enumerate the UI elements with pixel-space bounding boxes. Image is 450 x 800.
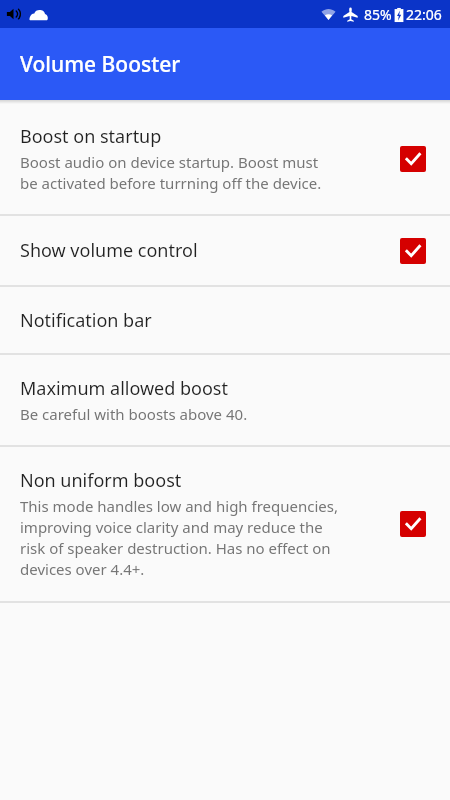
button[interactable]: Notification bar: [0, 287, 450, 353]
button[interactable]: Non uniform boost: [0, 447, 450, 601]
button[interactable]: Maximum allowed boost: [0, 355, 450, 445]
staticText: Boost on startup: [20, 124, 162, 149]
staticText: 85%: [364, 5, 392, 24]
staticText: This mode handles low and high frequenci…: [20, 496, 339, 580]
button[interactable]: Toggle setting: [398, 509, 428, 539]
button[interactable]: Show volume control: [0, 216, 450, 285]
staticText: Maximum allowed boost: [20, 376, 228, 401]
button[interactable]: Boost on startup: [0, 104, 450, 214]
staticText: Non uniform boost: [20, 468, 182, 493]
staticText: Notification bar: [20, 308, 152, 333]
staticText: Volume Booster: [20, 50, 181, 79]
button[interactable]: Toggle setting: [398, 236, 428, 266]
button[interactable]: Toggle setting: [398, 144, 428, 174]
staticText: 22:06: [406, 5, 442, 24]
staticText: Boost audio on device startup. Boost mus…: [20, 152, 322, 194]
staticText: Show volume control: [20, 238, 198, 263]
staticText: Be careful with boosts above 40.: [20, 404, 248, 424]
